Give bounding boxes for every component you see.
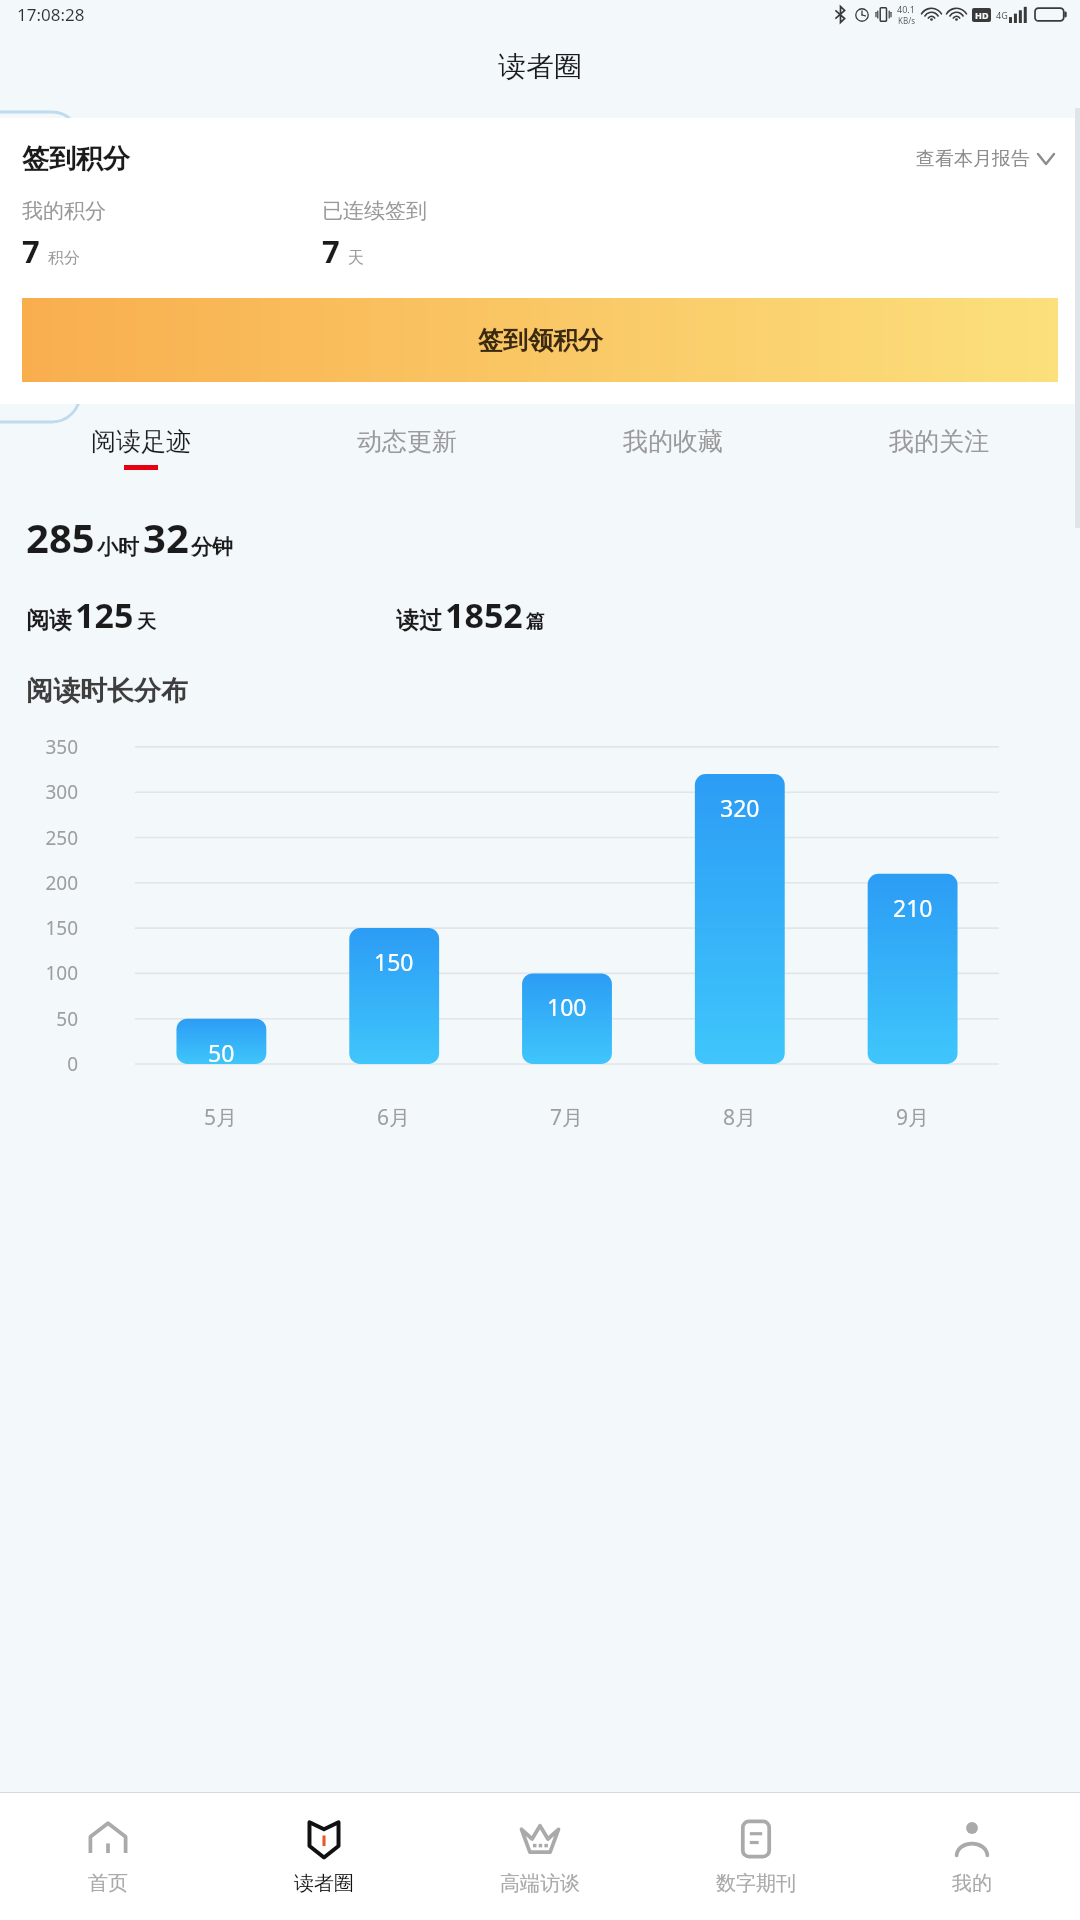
staticText: 285	[26, 510, 95, 564]
staticText: 积分	[48, 248, 80, 268]
button[interactable]: 签到领积分	[22, 298, 1058, 382]
staticText: 250	[12, 825, 78, 851]
staticText: 阅读足迹	[91, 426, 191, 457]
button[interactable]: 我的	[864, 1793, 1080, 1920]
staticText: 签到积分	[22, 142, 130, 176]
staticText: 7	[22, 230, 40, 272]
staticText: HD	[975, 9, 989, 21]
other: 数字期刊	[734, 1817, 778, 1861]
staticText: 1852	[445, 592, 523, 638]
other: 读者圈	[302, 1817, 346, 1861]
staticText: 150	[12, 915, 78, 941]
staticText: 查看本月报告	[916, 147, 1030, 171]
staticText: 32	[143, 510, 189, 564]
other: 高端访谈	[518, 1817, 562, 1861]
staticText: 50	[12, 1006, 78, 1032]
staticText: 200	[12, 870, 78, 896]
staticText: 7月	[550, 1103, 584, 1132]
staticText: 读者圈	[498, 49, 582, 84]
other: 我的	[950, 1817, 994, 1861]
staticText: 首页	[88, 1871, 128, 1896]
staticText: 阅读	[26, 606, 72, 635]
staticText: 读者圈	[294, 1871, 354, 1896]
button[interactable]: 阅读足迹	[8, 420, 274, 476]
staticText: 210	[893, 892, 933, 923]
staticText: 阅读时长分布	[26, 674, 188, 708]
staticText: KB/s	[898, 15, 915, 26]
staticText: 17:08:28	[17, 3, 85, 26]
staticText: 天	[137, 610, 156, 634]
staticText: 数字期刊	[716, 1871, 796, 1896]
staticText: 100	[12, 960, 78, 986]
staticText: 9月	[896, 1103, 930, 1132]
staticText: 4G	[996, 9, 1008, 21]
staticText: 350	[12, 734, 78, 760]
button[interactable]: 数字期刊	[648, 1793, 864, 1920]
staticText: 5月	[204, 1103, 238, 1132]
button[interactable]: 高端访谈	[432, 1793, 648, 1920]
staticText: 6月	[377, 1103, 411, 1132]
other: 首页	[86, 1817, 130, 1861]
staticText: 40.1	[897, 3, 915, 15]
button[interactable]: 首页	[0, 1793, 216, 1920]
staticText: 读过	[396, 606, 442, 635]
staticText: 50	[208, 1037, 235, 1068]
staticText: 125	[75, 592, 134, 638]
staticText: 100	[547, 991, 587, 1022]
button[interactable]: 我的关注	[806, 420, 1072, 476]
staticText: 0	[12, 1051, 78, 1077]
staticText: 签到领积分	[478, 325, 603, 356]
staticText: 分钟	[191, 534, 233, 560]
staticText: 我的	[952, 1871, 992, 1896]
button[interactable]: 读者圈	[216, 1793, 432, 1920]
staticText: 高端访谈	[500, 1871, 580, 1896]
staticText: 8月	[723, 1103, 757, 1132]
staticText: 320	[720, 792, 760, 823]
staticText: 7	[322, 230, 340, 272]
button[interactable]: 动态更新	[274, 420, 540, 476]
staticText: 我的收藏	[623, 426, 723, 457]
staticText: 已连续签到	[322, 198, 427, 224]
staticText: 150	[374, 946, 414, 977]
staticText: 我的关注	[889, 426, 989, 457]
button[interactable]: 查看本月报告	[912, 143, 1058, 175]
staticText: 小时	[97, 534, 139, 560]
button[interactable]: 我的收藏	[540, 420, 806, 476]
staticText: 300	[12, 779, 78, 805]
staticText: 篇	[526, 610, 545, 634]
staticText: 动态更新	[357, 426, 457, 457]
staticText: 天	[348, 248, 364, 268]
staticText: 我的积分	[22, 198, 106, 224]
